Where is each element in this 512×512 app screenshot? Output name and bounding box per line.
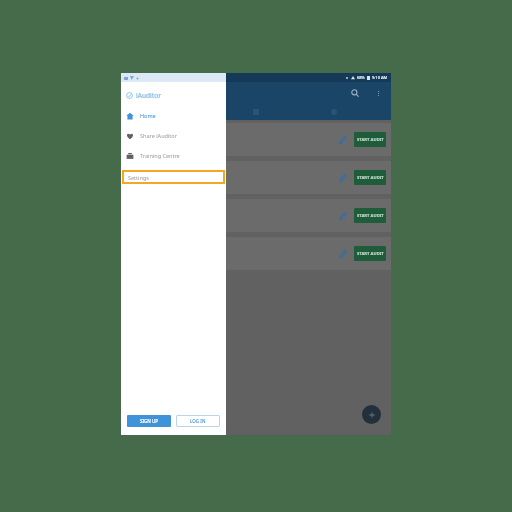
staticText: 68% bbox=[357, 75, 365, 80]
staticText: LOG IN bbox=[190, 418, 206, 424]
button[interactable]: START AUDIT bbox=[354, 132, 386, 147]
staticText: Settings bbox=[128, 174, 149, 181]
button[interactable]: Share iAuditor bbox=[121, 129, 226, 142]
staticText: Training Centre bbox=[140, 152, 180, 159]
button[interactable]: Edit template bbox=[121, 237, 391, 270]
button[interactable]: Edit template bbox=[336, 171, 350, 185]
button[interactable]: Edit template bbox=[336, 133, 350, 147]
button[interactable]: Notifications bbox=[314, 104, 354, 120]
staticText: START AUDIT bbox=[357, 251, 384, 257]
staticText: Home bbox=[140, 112, 156, 119]
button[interactable]: Settings bbox=[122, 170, 225, 184]
button[interactable]: Training Centre bbox=[121, 149, 226, 162]
staticText: iAuditor bbox=[136, 91, 162, 100]
staticText: 9:10 AM bbox=[372, 75, 388, 80]
staticText: START AUDIT bbox=[357, 137, 384, 143]
button[interactable]: Sample bbox=[121, 123, 391, 156]
button[interactable]: Create new audit bbox=[362, 405, 381, 424]
button[interactable]: START AUDIT bbox=[354, 208, 386, 223]
button[interactable]: SIGN UP bbox=[127, 415, 171, 427]
staticText: SIGN UP bbox=[140, 418, 159, 424]
button[interactable]: Edit template bbox=[121, 199, 391, 232]
staticText: START AUDIT bbox=[357, 175, 384, 181]
button[interactable]: Home bbox=[121, 109, 226, 122]
button[interactable]: Edit template bbox=[336, 209, 350, 223]
staticText: START AUDIT bbox=[357, 213, 384, 219]
button[interactable]: LOG IN bbox=[176, 415, 220, 427]
button[interactable]: START AUDIT bbox=[354, 170, 386, 185]
button[interactable]: More options bbox=[371, 86, 385, 100]
staticText: Share iAuditor bbox=[140, 132, 177, 139]
button[interactable]: Edit template bbox=[121, 161, 391, 194]
button[interactable]: START AUDIT bbox=[354, 246, 386, 261]
button[interactable]: Audits bbox=[236, 104, 276, 120]
button[interactable]: Search bbox=[348, 86, 362, 100]
button[interactable]: Edit template bbox=[336, 247, 350, 261]
staticText: Sample bbox=[125, 132, 147, 140]
